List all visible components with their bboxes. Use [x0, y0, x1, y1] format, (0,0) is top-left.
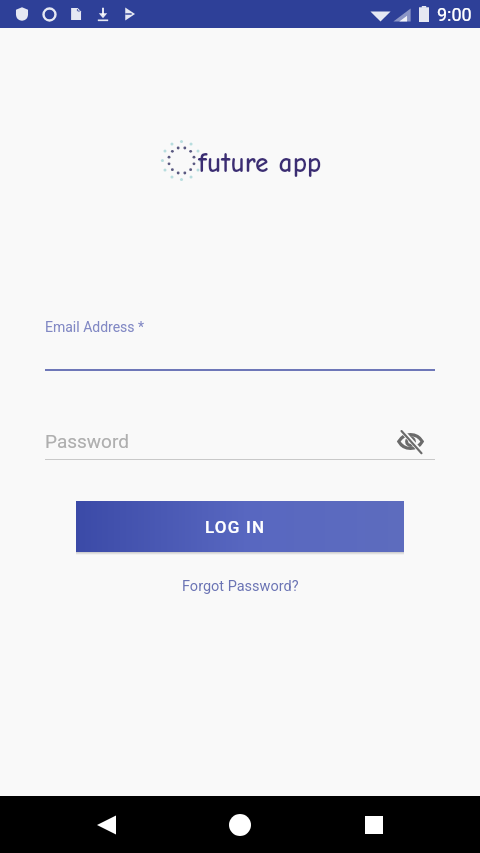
button[interactable]: LOG IN	[76, 501, 404, 552]
button[interactable]: Forgot Password?	[174, 574, 307, 599]
button[interactable]: Show password	[393, 424, 427, 458]
button[interactable]: Recents	[346, 797, 402, 853]
staticText: 9:00	[437, 4, 472, 25]
button[interactable]: Home	[212, 797, 268, 853]
staticText: Forgot Password?	[182, 578, 299, 595]
staticText: LOG IN	[205, 517, 266, 537]
button[interactable]: Back	[78, 797, 134, 853]
staticText: Password	[45, 430, 129, 452]
staticText: Email Address *	[45, 319, 145, 335]
staticText: future app	[198, 147, 322, 179]
